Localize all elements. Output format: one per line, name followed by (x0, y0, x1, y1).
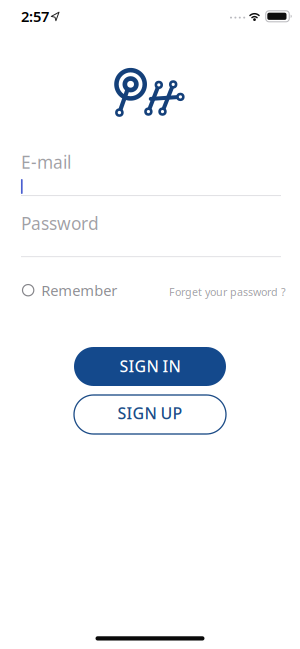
staticText: Forget your password ? (169, 285, 286, 299)
button[interactable]: Remember (22, 279, 152, 301)
button[interactable]: Password (21, 212, 281, 257)
staticText: E-mail (21, 151, 71, 174)
button[interactable]: SIGN IN (74, 347, 226, 386)
staticText: SIGN UP (117, 402, 182, 424)
staticText: SIGN IN (119, 355, 180, 377)
staticText: 2:57 (21, 6, 49, 26)
button[interactable]: SIGN UP (74, 395, 226, 434)
staticText: Password (21, 212, 99, 235)
staticText: Remember (41, 280, 117, 300)
button[interactable]: Forget your password ? (146, 284, 286, 300)
button[interactable]: E-mail (21, 151, 281, 196)
